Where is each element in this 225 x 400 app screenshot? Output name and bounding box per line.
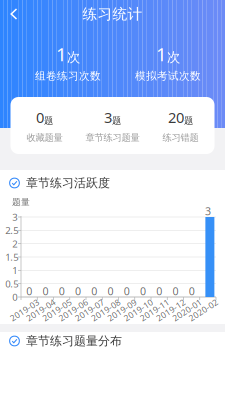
- staticText: 练习统计: [82, 5, 142, 23]
- staticText: 0: [12, 290, 17, 304]
- staticText: 0: [75, 284, 81, 298]
- button[interactable]: Back: [0, 0, 42, 28]
- staticText: 2019-03: [8, 304, 41, 316]
- staticText: 2020-01: [171, 304, 204, 316]
- button[interactable]: 章节练习活跃度: [0, 174, 225, 192]
- staticText: 2019-05: [41, 304, 74, 316]
- staticText: 2: [12, 237, 17, 250]
- staticText: 3: [205, 204, 211, 218]
- staticText: 2020-02: [187, 304, 220, 316]
- staticText: 2019-04: [24, 304, 57, 316]
- staticText: 2.5: [5, 224, 18, 237]
- staticText: 0: [26, 284, 32, 298]
- staticText: 2019-10: [122, 304, 155, 316]
- staticText: 1: [12, 264, 17, 277]
- staticText: 0: [107, 284, 113, 298]
- staticText: 0: [140, 284, 146, 298]
- staticText: 2019-09: [106, 304, 139, 316]
- staticText: 0题: [36, 107, 53, 127]
- staticText: 章节练习活跃度: [26, 176, 110, 190]
- staticText: 20题: [168, 107, 193, 127]
- staticText: 收藏题量: [26, 132, 62, 143]
- staticText: 0.5: [5, 277, 18, 290]
- staticText: 1次: [56, 42, 80, 66]
- staticText: 0: [91, 284, 97, 298]
- staticText: 1.5: [5, 250, 18, 264]
- staticText: 2019-06: [57, 304, 90, 316]
- staticText: 0: [124, 284, 130, 298]
- staticText: 组卷练习次数: [35, 69, 101, 82]
- staticText: 章节练习题量: [85, 132, 139, 143]
- staticText: 2019-08: [89, 304, 122, 316]
- staticText: 0: [189, 284, 195, 298]
- staticText: 模拟考试次数: [135, 69, 201, 82]
- staticText: 2019-12: [154, 304, 187, 316]
- button[interactable]: 章节练习题量分布: [0, 332, 225, 350]
- staticText: 0: [156, 284, 162, 298]
- staticText: 1次: [156, 42, 180, 66]
- staticText: 练习错题: [162, 132, 198, 143]
- staticText: 0: [59, 284, 65, 298]
- staticText: 0: [42, 284, 48, 298]
- staticText: 2019-11: [138, 304, 171, 316]
- staticText: 0: [172, 284, 178, 298]
- staticText: 3: [12, 210, 17, 224]
- staticText: 2019-07: [73, 304, 106, 316]
- staticText: 题量: [12, 196, 30, 208]
- staticText: 3题: [104, 107, 121, 127]
- staticText: 章节练习题量分布: [26, 334, 122, 348]
